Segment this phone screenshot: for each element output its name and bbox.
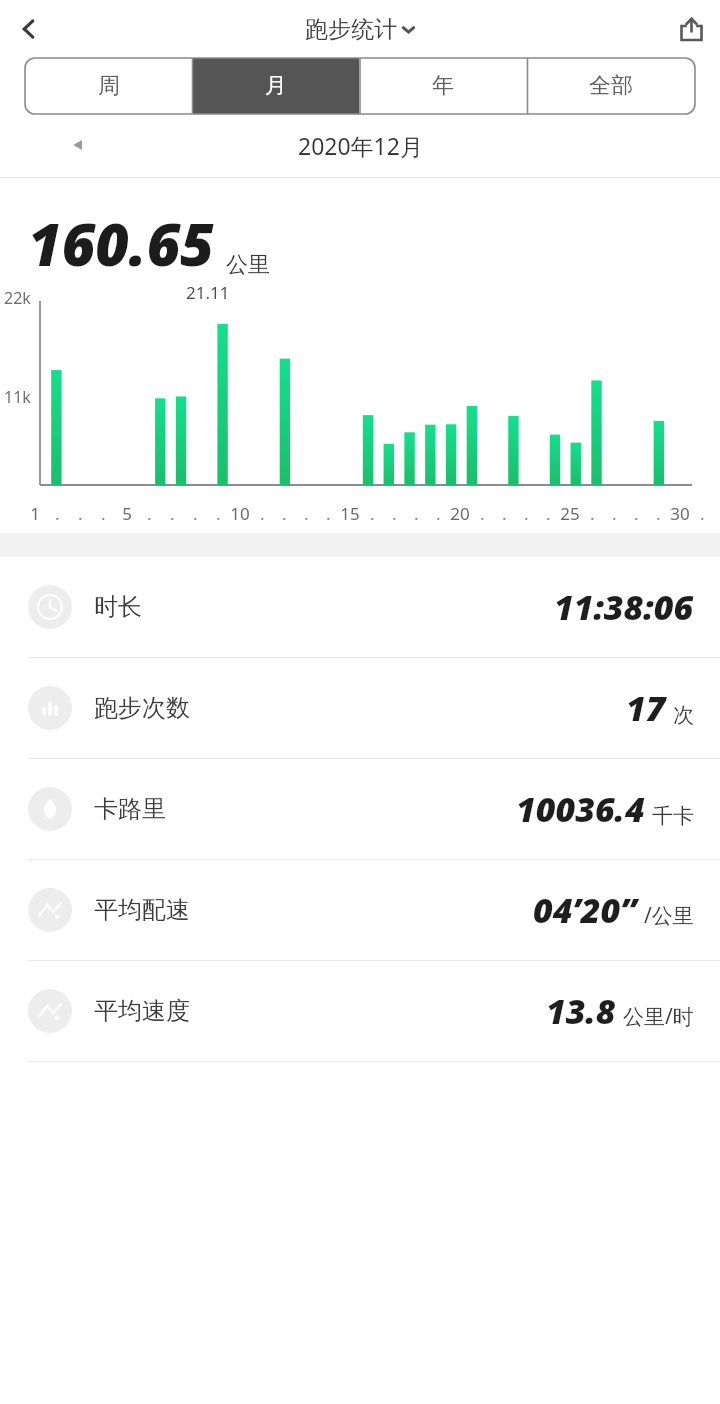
staticText: 10 (230, 502, 250, 525)
staticText: 21.11 (186, 281, 230, 304)
button[interactable]: 平均配速 (0, 860, 720, 960)
button[interactable]: Share (662, 0, 720, 58)
staticText: . (282, 502, 287, 525)
staticText: 13.8 (546, 988, 616, 1034)
staticText: 1 (30, 502, 40, 525)
staticText: 月 (265, 72, 287, 100)
staticText: 时长 (94, 592, 142, 622)
staticText: 160.65 (28, 204, 214, 283)
staticText: /公里 (644, 901, 694, 930)
staticText: . (78, 502, 83, 525)
button[interactable]: 跑步统计 (305, 15, 415, 44)
button[interactable]: 年 (359, 58, 527, 114)
staticText: . (656, 502, 661, 525)
staticText: 千卡 (652, 803, 694, 829)
staticText: 年 (432, 72, 454, 100)
staticText: . (304, 502, 309, 525)
button[interactable]: 周 (25, 58, 192, 114)
staticText: 跑步次数 (94, 693, 190, 723)
staticText: 30 (670, 502, 690, 525)
staticText: 次 (673, 702, 694, 728)
staticText: . (392, 502, 397, 525)
staticText: . (524, 502, 529, 525)
staticText: 5 (122, 502, 132, 525)
staticText: 11:38:06 (554, 584, 694, 630)
staticText: 04’20” (533, 887, 637, 933)
button[interactable]: 月 (192, 58, 359, 114)
staticText: 卡路里 (94, 794, 166, 824)
staticText: . (700, 502, 705, 525)
staticText: . (370, 502, 375, 525)
staticText: 22k (4, 287, 31, 309)
staticText: 10036.4 (516, 786, 645, 832)
button[interactable]: 跑步次数 (0, 658, 720, 758)
staticText: 17 (626, 685, 666, 731)
staticText: 全部 (589, 72, 633, 100)
staticText: . (101, 502, 106, 525)
staticText: . (216, 502, 221, 525)
staticText: . (260, 502, 265, 525)
staticText: 25 (560, 502, 580, 525)
staticText: 2020年12月 (298, 130, 423, 161)
staticText: . (634, 502, 639, 525)
staticText: . (414, 502, 419, 525)
staticText: 跑步统计 (305, 15, 397, 44)
staticText: . (55, 502, 60, 525)
button[interactable]: 时长 (0, 557, 720, 657)
staticText: . (480, 502, 485, 525)
staticText: 平均配速 (94, 895, 190, 925)
button[interactable]: 平均速度 (0, 961, 720, 1061)
staticText: . (546, 502, 551, 525)
staticText: 15 (340, 502, 360, 525)
button[interactable]: Back (0, 0, 58, 58)
staticText: 公里 (226, 251, 270, 279)
staticText: 公里/时 (623, 1002, 694, 1031)
staticText: . (193, 502, 198, 525)
staticText: . (436, 502, 441, 525)
staticText: 平均速度 (94, 996, 190, 1026)
staticText: . (590, 502, 595, 525)
staticText: 11k (4, 386, 31, 408)
staticText: . (170, 502, 175, 525)
staticText: 20 (450, 502, 470, 525)
staticText: . (147, 502, 152, 525)
button[interactable]: 全部 (527, 58, 695, 114)
staticText: . (502, 502, 507, 525)
staticText: . (612, 502, 617, 525)
staticText: . (326, 502, 331, 525)
button[interactable]: 卡路里 (0, 759, 720, 859)
button[interactable]: Previous month (58, 125, 98, 165)
staticText: 周 (98, 72, 120, 100)
